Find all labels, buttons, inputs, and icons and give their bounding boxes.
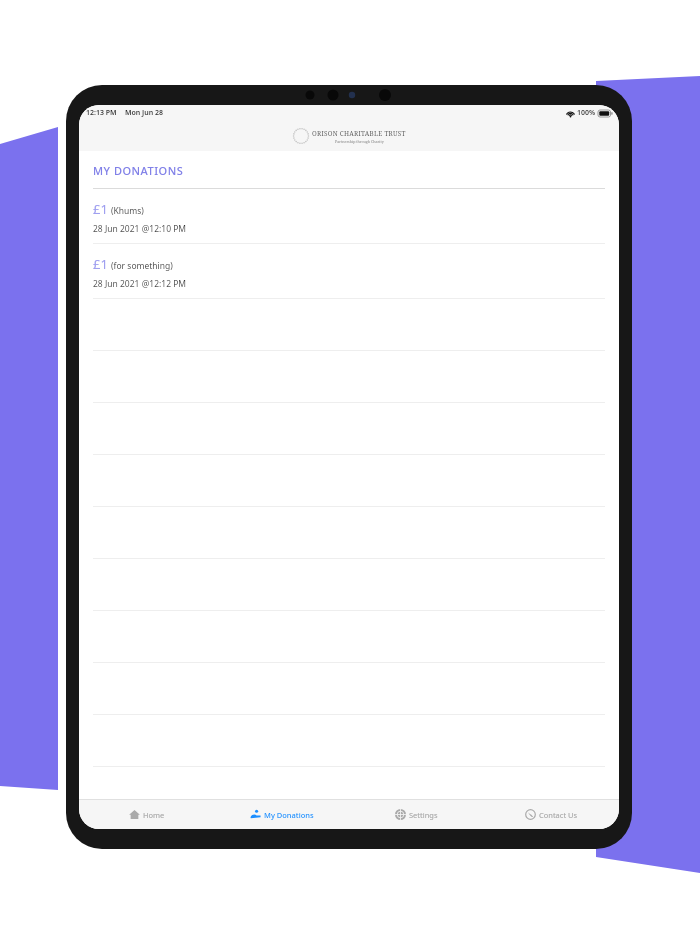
- staticText: Partnership through Charity: [335, 139, 384, 144]
- staticText: Settings: [409, 810, 438, 820]
- button[interactable]: Settings: [349, 800, 484, 829]
- other: Settings: [395, 809, 406, 820]
- staticText: 28 Jun 2021 @12:10 PM: [93, 223, 187, 235]
- staticText: ORISON CHARITABLE TRUST: [312, 129, 406, 138]
- staticText: £1: [93, 255, 108, 273]
- button[interactable]: Contact Us: [484, 800, 619, 829]
- staticText: Contact Us: [539, 810, 578, 820]
- button[interactable]: My Donations: [214, 800, 349, 829]
- button[interactable]: Home: [79, 800, 214, 829]
- staticText: (for something): [111, 260, 173, 272]
- other: My Donations: [250, 809, 261, 820]
- other: Home: [129, 809, 140, 820]
- staticText: (Khums): [111, 205, 144, 217]
- button[interactable]: £1: [93, 244, 605, 299]
- staticText: My Donations: [264, 810, 314, 820]
- staticText: MY DONATIONS: [93, 163, 184, 178]
- staticText: £1: [93, 200, 108, 218]
- staticText: 12:13 PM: [86, 108, 117, 118]
- other: Contact Us: [525, 809, 536, 820]
- staticText: Home: [143, 810, 165, 820]
- staticText: Mon Jun 28: [125, 108, 164, 118]
- staticText: 28 Jun 2021 @12:12 PM: [93, 278, 187, 290]
- staticText: 100%: [577, 108, 596, 118]
- button[interactable]: £1: [93, 189, 605, 244]
